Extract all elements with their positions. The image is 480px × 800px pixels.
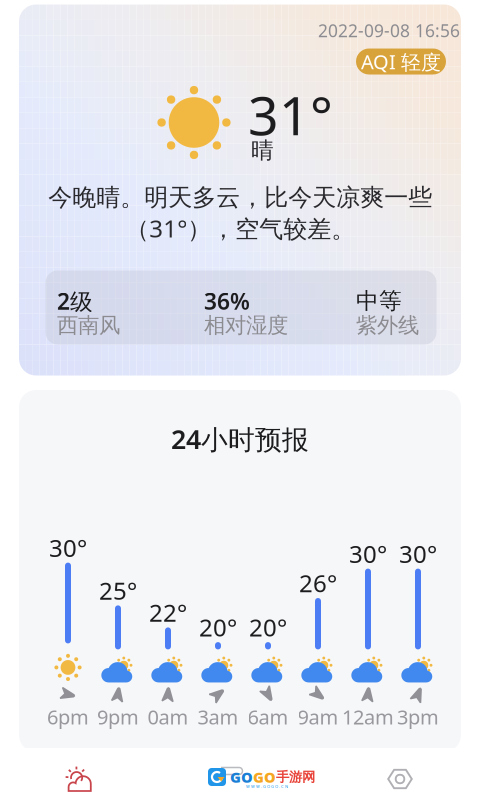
- staticText: 手游网: [276, 769, 315, 785]
- staticText: 2022-09-08 16:56: [318, 19, 460, 42]
- staticText: 30°: [49, 532, 87, 564]
- button[interactable]: AQI 轻度: [356, 48, 446, 74]
- staticText: 26°: [299, 567, 337, 599]
- staticText: 30°: [349, 538, 387, 570]
- staticText: 9am: [297, 703, 338, 730]
- staticText: 0am: [147, 703, 188, 730]
- staticText: 3pm: [397, 703, 439, 730]
- staticText: 6am: [247, 703, 288, 730]
- staticText: 25°: [99, 574, 137, 606]
- staticText: 西南风: [57, 312, 120, 339]
- staticText: 3am: [197, 703, 238, 730]
- staticText: GO: [230, 767, 253, 787]
- staticText: W W W . G O G O . C N: [246, 784, 288, 789]
- staticText: 9pm: [97, 703, 139, 730]
- staticText: 36%: [204, 286, 250, 316]
- staticText: 31°: [248, 79, 333, 150]
- staticText: 30°: [399, 538, 437, 570]
- staticText: 紫外线: [356, 312, 419, 339]
- button[interactable]: Weather: [0, 753, 160, 800]
- staticText: 20°: [249, 611, 287, 643]
- staticText: 22°: [149, 596, 187, 628]
- staticText: 今晚晴。明天多云，比今天凉爽一些（31°），空气较差。: [48, 183, 432, 244]
- staticText: 12am: [342, 703, 394, 730]
- staticText: GO: [253, 767, 276, 787]
- staticText: 24小时预报: [171, 421, 309, 457]
- staticText: 20°: [199, 611, 237, 643]
- staticText: 2级: [57, 286, 93, 316]
- staticText: 中等: [356, 287, 402, 315]
- staticText: AQI 轻度: [361, 48, 441, 75]
- staticText: 晴: [251, 137, 274, 164]
- button[interactable]: Cities: [188, 751, 348, 800]
- button[interactable]: Settings: [320, 753, 480, 800]
- staticText: 6pm: [47, 703, 89, 730]
- staticText: 相对湿度: [204, 312, 288, 339]
